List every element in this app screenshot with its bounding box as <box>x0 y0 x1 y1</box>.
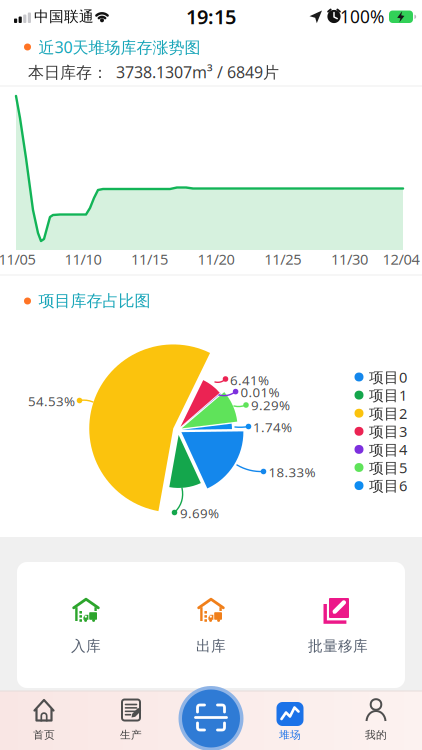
button[interactable] <box>178 685 244 750</box>
button[interactable]: 堆场 <box>255 691 325 750</box>
staticText: 12/04 <box>382 249 419 269</box>
staticText: 项目5 <box>369 458 407 477</box>
staticText: 项目2 <box>369 403 407 423</box>
staticText: 近30天堆场库存涨势图 <box>38 36 200 58</box>
button[interactable]: 我的 <box>341 691 411 750</box>
button[interactable]: 批量移库 <box>278 562 398 688</box>
staticText: 项目3 <box>369 422 407 441</box>
staticText: 1.74% <box>253 418 292 436</box>
staticText: 本日库存： 3738.1307m³ / 6849片 <box>28 61 279 83</box>
staticText: 11/05 <box>0 249 35 269</box>
staticText: 9.29% <box>251 396 290 414</box>
staticText: 项目库存占比图 <box>38 291 150 311</box>
staticText: 项目6 <box>369 476 407 495</box>
staticText: 项目1 <box>369 385 407 405</box>
staticText: 中国联通 <box>34 7 94 25</box>
staticText: 18.33% <box>268 463 315 481</box>
button[interactable]: 入库 <box>26 562 146 688</box>
staticText: 11/25 <box>264 249 301 269</box>
staticText: 批量移库 <box>308 637 368 655</box>
staticText: 100% <box>340 5 384 28</box>
staticText: 生产 <box>120 728 142 741</box>
staticText: 9.69% <box>180 504 219 522</box>
button[interactable]: 出库 <box>151 562 271 688</box>
staticText: 0.01% <box>240 383 279 401</box>
button[interactable]: 生产 <box>96 691 166 750</box>
staticText: 11/30 <box>331 249 368 269</box>
staticText: 项目0 <box>369 367 407 387</box>
staticText: 项目4 <box>369 440 407 459</box>
staticText: 堆场 <box>279 728 301 741</box>
staticText: 19:15 <box>186 3 236 30</box>
staticText: 首页 <box>33 728 55 741</box>
staticText: 入库 <box>71 637 101 655</box>
staticText: 我的 <box>365 728 387 741</box>
staticText: 11/15 <box>131 249 168 269</box>
staticText: 11/10 <box>64 249 101 269</box>
staticText: 出库 <box>196 637 226 655</box>
staticText: 11/20 <box>197 249 234 269</box>
button[interactable]: 首页 <box>9 691 79 750</box>
staticText: 6.41% <box>230 371 269 389</box>
staticText: 54.53% <box>28 392 75 410</box>
